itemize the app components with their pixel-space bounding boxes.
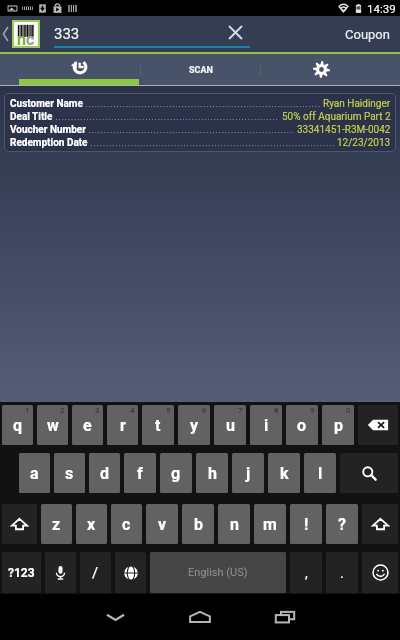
button[interactable]: i [250, 405, 282, 445]
button[interactable]: z [41, 504, 72, 544]
button[interactable]: g [160, 453, 192, 493]
staticText: b [194, 515, 203, 534]
button[interactable]: Shift [362, 504, 398, 544]
button[interactable]: Navigate up [0, 16, 40, 52]
button[interactable]: ? [326, 504, 358, 544]
staticText: a [30, 464, 39, 483]
staticText: o [297, 416, 307, 435]
staticText: q [13, 416, 23, 435]
button[interactable]: w [37, 405, 68, 445]
staticText: 33341451-R3M-0042 [297, 124, 391, 136]
staticText: z [52, 515, 61, 534]
button[interactable]: m [254, 504, 286, 544]
staticText: s [65, 464, 74, 483]
button[interactable]: . [326, 552, 358, 593]
staticText: e [83, 416, 92, 435]
staticText: 12/23/2013 [337, 137, 391, 149]
button[interactable]: Search [340, 453, 398, 493]
button[interactable]: Clear query [220, 17, 250, 47]
button[interactable]: Coupon [335, 16, 400, 52]
button[interactable]: Back [91, 594, 139, 640]
button[interactable]: Home [176, 594, 224, 640]
button[interactable]: Recent apps [261, 594, 309, 640]
staticText: 6 [202, 406, 207, 415]
button[interactable]: s [54, 453, 85, 493]
staticText: m [263, 515, 277, 534]
staticText: p [334, 416, 343, 435]
staticText: x [87, 515, 96, 534]
staticText: t [155, 416, 161, 435]
button[interactable]: r [107, 405, 138, 445]
staticText: r [120, 416, 126, 435]
staticText: 333 [54, 25, 80, 43]
button[interactable]: t [142, 405, 174, 445]
button[interactable]: h [196, 453, 228, 493]
staticText: n [17, 30, 26, 49]
button[interactable]: o [286, 405, 318, 445]
staticText: k [280, 464, 289, 483]
button[interactable]: Backspace [358, 405, 398, 445]
staticText: f [137, 464, 143, 483]
button[interactable]: q [2, 405, 33, 445]
button[interactable]: l [304, 453, 336, 493]
button[interactable]: d [89, 453, 120, 493]
button[interactable]: Settings [261, 61, 400, 79]
button[interactable]: ! [290, 504, 322, 544]
staticText: Ryan Haidinger [323, 98, 391, 110]
staticText: 50% off Aquarium Part 2 [282, 111, 391, 123]
staticText: c [26, 30, 35, 49]
button[interactable]: ?123 [2, 552, 41, 593]
staticText: Voucher Number [10, 124, 86, 136]
staticText: , [305, 565, 308, 581]
staticText: Redemption Date [10, 137, 88, 149]
button[interactable]: History [0, 61, 140, 79]
staticText: 5 [166, 406, 171, 415]
button[interactable]: x [76, 504, 107, 544]
button[interactable]: b [182, 504, 214, 544]
button[interactable]: e [72, 405, 103, 445]
button[interactable]: c [111, 504, 142, 544]
staticText: / [92, 564, 99, 582]
button[interactable]: p [322, 405, 354, 445]
staticText: 2 [60, 406, 65, 415]
button[interactable]: y [178, 405, 210, 445]
staticText: c [122, 515, 131, 534]
staticText: English (US) [188, 566, 248, 579]
button[interactable]: a [19, 453, 50, 493]
staticText: 1 [25, 406, 30, 415]
staticText: 14:39 [367, 2, 396, 15]
button[interactable]: u [214, 405, 246, 445]
staticText: g [171, 464, 181, 483]
staticText: Deal Title [10, 111, 53, 123]
button[interactable]: , [290, 552, 322, 593]
button[interactable]: Customer Name [10, 97, 391, 152]
staticText: Coupon [345, 27, 390, 42]
button[interactable]: n [218, 504, 250, 544]
button[interactable]: / [80, 552, 111, 593]
staticText: ! [304, 515, 309, 534]
staticText: Customer Name [10, 98, 83, 110]
button[interactable]: Voice input [45, 552, 76, 593]
button[interactable]: j [232, 453, 264, 493]
staticText: SCAN [189, 65, 213, 76]
button[interactable]: Emoji [362, 552, 398, 593]
button[interactable]: SCAN [141, 61, 260, 79]
button[interactable]: Change language [115, 552, 146, 593]
button[interactable]: Shift [2, 504, 37, 544]
button[interactable]: v [146, 504, 178, 544]
staticText: 8 [274, 406, 279, 415]
staticText: h [208, 464, 217, 483]
staticText: 4 [130, 406, 135, 415]
button[interactable]: f [124, 453, 156, 493]
staticText: y [190, 416, 199, 435]
button[interactable]: k [268, 453, 300, 493]
staticText: n [230, 515, 239, 534]
button[interactable]: English (US) [150, 552, 286, 593]
staticText: ?123 [8, 566, 35, 580]
staticText: 3 [95, 406, 100, 415]
staticText: . [340, 565, 344, 581]
staticText: u [226, 416, 235, 435]
staticText: w [47, 416, 59, 435]
staticText: 0 [346, 406, 351, 415]
staticText: l [318, 464, 323, 483]
